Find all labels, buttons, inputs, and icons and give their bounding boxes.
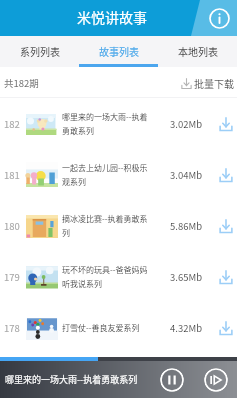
- staticText: 故事列表: [99, 44, 139, 58]
- staticText: 本地列表: [178, 44, 218, 58]
- button[interactable]: Download: [203, 149, 237, 200]
- staticText: 178: [4, 321, 20, 335]
- staticText: 米悦讲故事: [77, 7, 147, 27]
- button[interactable]: 故事列表: [79, 36, 158, 67]
- button[interactable]: Download: [203, 200, 237, 251]
- staticText: 批量下载: [194, 76, 234, 90]
- staticText: 系列列表: [20, 44, 60, 58]
- staticText: 3.65Mb: [170, 270, 203, 284]
- button[interactable]: Info: [207, 6, 232, 31]
- staticText: 共182期: [4, 76, 39, 90]
- staticText: 哪里来的一场大雨--执着勇敢系列: [62, 111, 148, 136]
- button[interactable]: Download: [203, 302, 237, 353]
- staticText: 玩不坏的玩具--爸爸妈妈听我说系列: [62, 264, 148, 289]
- button[interactable]: Pause: [160, 368, 184, 392]
- button[interactable]: 178: [0, 302, 237, 353]
- button[interactable]: 181: [0, 149, 237, 200]
- button[interactable]: 179: [0, 251, 237, 302]
- staticText: 摘冰凌比赛--执着勇敢系列: [62, 213, 148, 238]
- staticText: 一起去上幼儿园--积极乐观系列: [62, 162, 148, 187]
- button[interactable]: 182: [0, 98, 237, 149]
- button[interactable]: Download: [203, 251, 237, 302]
- staticText: 180: [4, 219, 20, 233]
- staticText: 哪里来的一场大雨--执着勇敢系列: [5, 373, 138, 386]
- staticText: 5.86Mb: [170, 219, 203, 233]
- button[interactable]: 本地列表: [158, 36, 237, 67]
- staticText: 179: [4, 270, 20, 284]
- button[interactable]: 180: [0, 200, 237, 251]
- button[interactable]: Next: [204, 368, 228, 392]
- staticText: 4.32Mb: [170, 321, 203, 335]
- staticText: 打雪仗--善良友爱系列: [62, 322, 148, 334]
- button[interactable]: 批量下载: [181, 76, 234, 90]
- button[interactable]: Download: [203, 98, 237, 149]
- button[interactable]: 系列列表: [0, 36, 79, 67]
- staticText: 181: [4, 168, 20, 182]
- staticText: 3.02Mb: [170, 117, 203, 131]
- staticText: 182: [4, 117, 20, 131]
- staticText: 3.04Mb: [170, 168, 203, 182]
